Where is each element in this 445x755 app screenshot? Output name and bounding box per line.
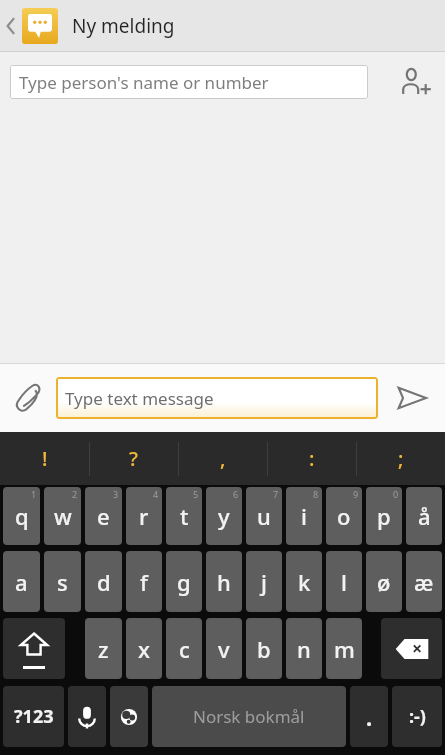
button[interactable]: ? — [89, 432, 178, 485]
button[interactable]: , — [178, 432, 267, 485]
button[interactable]: f — [126, 551, 162, 612]
staticText: t — [180, 501, 189, 531]
staticText: 2 — [72, 488, 78, 500]
staticText: , — [220, 445, 226, 472]
staticText: m — [334, 634, 355, 664]
staticText: u — [257, 501, 271, 531]
button[interactable]: n — [286, 618, 322, 679]
button[interactable]: Shift — [3, 618, 65, 679]
staticText: n — [297, 634, 311, 664]
button[interactable]: Type person's name or number — [10, 65, 368, 99]
button[interactable]: ø — [366, 551, 402, 612]
staticText: s — [57, 567, 68, 597]
button[interactable]: ! — [0, 432, 89, 485]
button[interactable]: . — [350, 686, 388, 747]
staticText: c — [179, 634, 190, 664]
staticText: ; — [398, 445, 404, 472]
staticText: 7 — [273, 488, 279, 500]
staticText: 0 — [393, 488, 399, 500]
button[interactable]: ?123 — [3, 686, 64, 747]
button[interactable]: y — [206, 487, 242, 545]
button[interactable]: v — [206, 618, 242, 679]
button[interactable]: h — [206, 551, 242, 612]
button[interactable]: m — [326, 618, 362, 679]
button[interactable]: Back — [0, 8, 60, 44]
button[interactable]: r — [126, 487, 162, 545]
button[interactable]: Backspace — [381, 618, 442, 679]
staticText: p — [377, 501, 391, 531]
staticText: e — [97, 501, 110, 531]
staticText: 9 — [353, 488, 359, 500]
staticText: Type person's name or number — [19, 71, 269, 94]
staticText: z — [98, 634, 109, 664]
staticText: ?123 — [14, 704, 54, 729]
staticText: Type text message — [65, 387, 214, 410]
button[interactable]: Send — [378, 368, 445, 428]
button[interactable]: : — [267, 432, 356, 485]
button[interactable]: x — [126, 618, 162, 679]
button[interactable]: w — [44, 487, 81, 545]
button[interactable]: ; — [356, 432, 445, 485]
button[interactable]: i — [286, 487, 322, 545]
button[interactable]: a — [3, 551, 40, 612]
staticText: j — [261, 567, 267, 597]
staticText: f — [140, 567, 148, 597]
staticText: Ny melding — [72, 13, 175, 39]
staticText: 8 — [313, 488, 319, 500]
staticText: 6 — [233, 488, 239, 500]
staticText: r — [139, 501, 149, 531]
staticText: h — [217, 567, 231, 597]
button[interactable]: q — [3, 487, 40, 545]
button[interactable]: d — [85, 551, 122, 612]
staticText: k — [298, 567, 311, 597]
button[interactable]: Norsk bokmål — [152, 686, 346, 747]
staticText: 1 — [31, 488, 37, 500]
staticText: ø — [377, 567, 391, 597]
button[interactable]: s — [44, 551, 81, 612]
staticText: b — [257, 634, 271, 664]
button[interactable]: g — [166, 551, 202, 612]
button[interactable]: Add recipient — [395, 60, 439, 104]
staticText: å — [418, 501, 431, 531]
button[interactable]: Type text message — [56, 377, 378, 419]
staticText: g — [177, 567, 191, 597]
staticText: Norsk bokmål — [193, 705, 305, 728]
staticText: i — [301, 501, 307, 531]
staticText: . — [366, 702, 373, 732]
button[interactable]: j — [246, 551, 282, 612]
button[interactable]: e — [85, 487, 122, 545]
staticText: a — [15, 567, 28, 597]
button[interactable]: u — [246, 487, 282, 545]
staticText: d — [97, 567, 111, 597]
staticText: 4 — [153, 488, 159, 500]
staticText: v — [218, 634, 230, 664]
staticText: o — [337, 501, 351, 531]
button[interactable]: l — [326, 551, 362, 612]
staticText: 5 — [193, 488, 199, 500]
button[interactable]: p — [366, 487, 402, 545]
staticText: ? — [129, 445, 138, 472]
button[interactable]: :-) — [392, 686, 442, 747]
staticText: l — [341, 567, 347, 597]
button[interactable]: t — [166, 487, 202, 545]
button[interactable]: b — [246, 618, 282, 679]
button[interactable]: k — [286, 551, 322, 612]
staticText: y — [218, 501, 230, 531]
staticText: æ — [414, 567, 434, 597]
staticText: w — [54, 501, 72, 531]
staticText: 3 — [113, 488, 119, 500]
staticText: : — [309, 445, 315, 472]
button[interactable]: Attach — [0, 368, 56, 428]
staticText: :-) — [409, 704, 426, 729]
staticText: x — [138, 634, 150, 664]
staticText: ! — [42, 445, 48, 472]
button[interactable]: Change language — [110, 686, 148, 747]
staticText: q — [15, 501, 29, 531]
button[interactable]: å — [406, 487, 442, 545]
button[interactable]: z — [85, 618, 122, 679]
button[interactable]: Voice input — [68, 686, 106, 747]
button[interactable]: o — [326, 487, 362, 545]
button[interactable]: c — [166, 618, 202, 679]
staticText: × — [412, 636, 423, 661]
button[interactable]: æ — [406, 551, 442, 612]
